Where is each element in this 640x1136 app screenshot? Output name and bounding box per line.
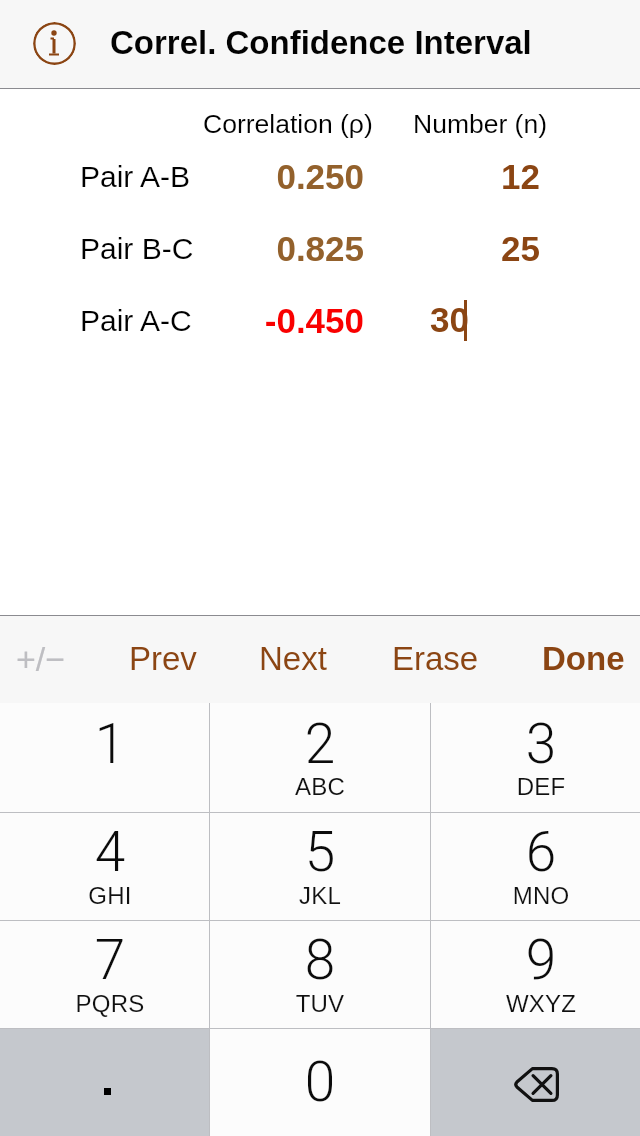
button[interactable]: 5: [210, 812, 431, 920]
staticText: MNO: [471, 882, 611, 909]
staticText: TUV: [250, 990, 390, 1017]
staticText: 3: [481, 712, 601, 776]
staticText: 0: [260, 1050, 380, 1114]
staticText: 9: [481, 928, 601, 992]
staticText: Prev: [129, 640, 197, 677]
button[interactable]: 2: [210, 703, 431, 812]
staticText: 6: [481, 820, 601, 884]
button[interactable]: 4: [0, 812, 210, 920]
button[interactable]: Erase: [380, 616, 490, 703]
staticText: DEF: [471, 773, 611, 800]
staticText: 30: [430, 300, 469, 339]
staticText: 8: [260, 928, 380, 992]
staticText: Correl. Confidence Interval: [110, 24, 532, 61]
staticText: 7: [50, 928, 170, 992]
button[interactable]: Prev: [117, 616, 209, 703]
staticText: Erase: [392, 640, 479, 677]
button[interactable]: 9: [431, 920, 640, 1028]
staticText: 0.825: [200, 229, 364, 268]
staticText: Correlation (ρ): [203, 109, 373, 139]
button[interactable]: Backspace: [431, 1028, 640, 1136]
button[interactable]: Decimal point: [0, 1028, 210, 1136]
button[interactable]: 8: [210, 920, 431, 1028]
button[interactable]: Done: [530, 616, 636, 703]
button[interactable]: 3: [431, 703, 640, 812]
button[interactable]: Toggle sign: [0, 616, 82, 703]
staticText: 1: [50, 712, 170, 776]
staticText: Done: [542, 640, 625, 677]
staticText: Pair A-C: [80, 304, 192, 338]
staticText: 12: [400, 157, 540, 196]
button[interactable]: 7: [0, 920, 210, 1028]
button[interactable]: Next: [247, 616, 341, 703]
button[interactable]: 6: [431, 812, 640, 920]
staticText: PQRS: [40, 990, 180, 1017]
staticText: Pair A-B: [80, 160, 191, 194]
staticText: ABC: [250, 773, 390, 800]
staticText: 25: [400, 229, 540, 268]
staticText: -0.450: [200, 301, 364, 340]
staticText: Number (n): [413, 109, 548, 139]
staticText: Pair B-C: [80, 232, 194, 266]
button[interactable]: 0: [210, 1028, 431, 1136]
staticText: 0.250: [200, 157, 364, 196]
staticText: +/−: [16, 640, 66, 678]
staticText: 2: [260, 712, 380, 776]
staticText: GHI: [40, 882, 180, 909]
staticText: 5: [260, 820, 380, 884]
button[interactable]: Info: [33, 22, 76, 65]
button[interactable]: 1: [0, 703, 210, 812]
staticText: WXYZ: [471, 990, 611, 1017]
staticText: 4: [50, 820, 170, 884]
staticText: Next: [259, 640, 327, 677]
staticText: JKL: [250, 882, 390, 909]
